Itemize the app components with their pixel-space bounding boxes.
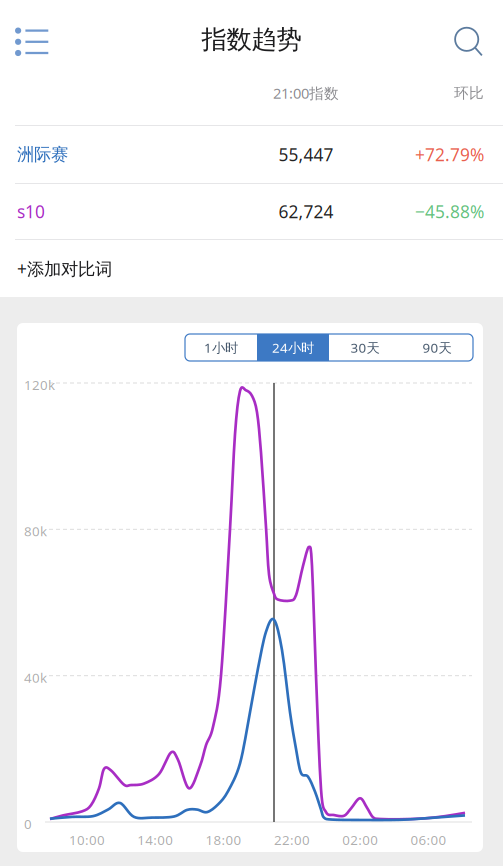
staticText: s10: [17, 200, 45, 223]
button[interactable]: +添加对比词: [0, 240, 503, 297]
staticText: 24小时: [272, 339, 314, 356]
button[interactable]: 洲际赛: [0, 126, 503, 183]
staticText: 80k: [24, 522, 47, 540]
button[interactable]: 24小时: [257, 334, 329, 361]
staticText: 洲际赛: [17, 144, 68, 165]
staticText: 90天: [422, 339, 451, 356]
staticText: 06:00: [410, 831, 446, 849]
staticText: 10:00: [69, 831, 105, 849]
staticText: 120k: [24, 376, 55, 394]
staticText: 14:00: [137, 831, 173, 849]
staticText: +添加对比词: [17, 257, 112, 280]
staticText: 30天: [350, 339, 379, 356]
staticText: +72.79%: [415, 143, 484, 166]
button[interactable]: 1小时: [185, 334, 257, 361]
staticText: 21:00指数: [273, 83, 339, 103]
button[interactable]: 30天: [329, 334, 401, 361]
staticText: 1小时: [204, 339, 238, 356]
staticText: 环比: [454, 84, 484, 102]
staticText: 0: [24, 815, 32, 833]
staticText: 55,447: [278, 143, 333, 166]
staticText: 18:00: [206, 831, 242, 849]
button[interactable]: Menu: [8, 16, 56, 68]
staticText: 指数趋势: [201, 24, 301, 55]
staticText: 22:00: [274, 831, 310, 849]
button[interactable]: s10: [0, 184, 503, 239]
staticText: −45.88%: [415, 200, 484, 223]
button[interactable]: 90天: [401, 334, 473, 361]
staticText: 02:00: [342, 831, 378, 849]
staticText: 40k: [24, 669, 47, 686]
button[interactable]: Search: [447, 16, 491, 68]
staticText: 62,724: [278, 200, 333, 223]
